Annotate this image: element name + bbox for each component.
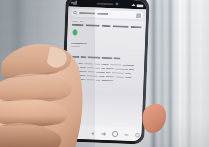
button[interactable]: Recent apps [123,132,130,138]
button[interactable]: Forward [100,131,107,137]
button[interactable]: Search documents [71,9,143,19]
button[interactable]: Account [136,13,141,18]
button[interactable]: Home [111,130,119,138]
button[interactable]: App logo [71,29,79,36]
button[interactable]: More options [134,132,141,138]
button[interactable]: Back [89,130,96,137]
